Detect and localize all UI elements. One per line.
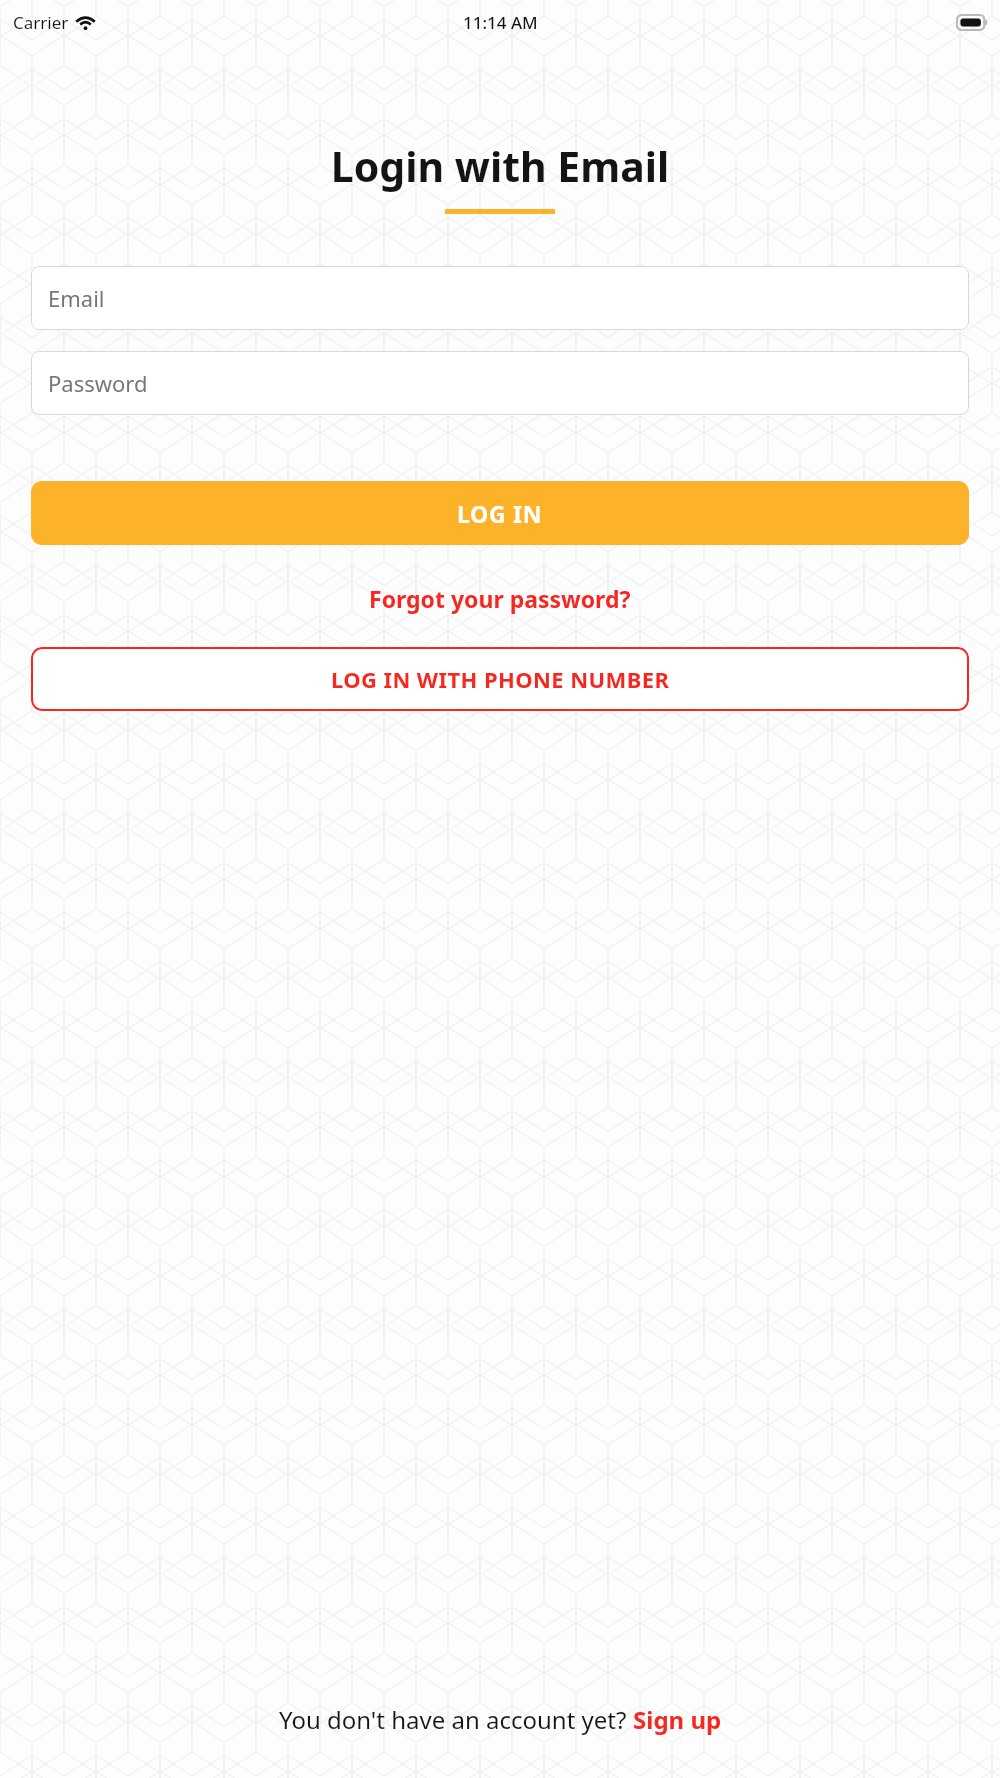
button[interactable]: LOG IN WITH PHONE NUMBER — [31, 647, 969, 711]
staticText: LOG IN WITH PHONE NUMBER — [331, 664, 670, 694]
staticText: Sign up — [633, 1703, 722, 1736]
staticText: Email — [48, 283, 105, 313]
staticText: You don't have an account yet? — [279, 1703, 633, 1736]
staticText: 11:14 AM — [463, 11, 538, 34]
staticText: Password — [48, 368, 148, 398]
staticText: Forgot your password? — [369, 583, 631, 614]
other: Wi-Fi signal — [76, 13, 95, 32]
button[interactable]: Password — [31, 351, 969, 415]
button[interactable]: LOG IN — [31, 481, 969, 545]
staticText: Carrier — [13, 11, 69, 34]
button[interactable]: Forgot your password? — [359, 577, 641, 620]
button[interactable]: Email — [31, 266, 969, 330]
other: Battery full — [957, 15, 988, 30]
staticText: Login with Email — [0, 138, 1000, 194]
button[interactable]: Sign up — [633, 1703, 722, 1736]
staticText: LOG IN — [457, 498, 543, 529]
